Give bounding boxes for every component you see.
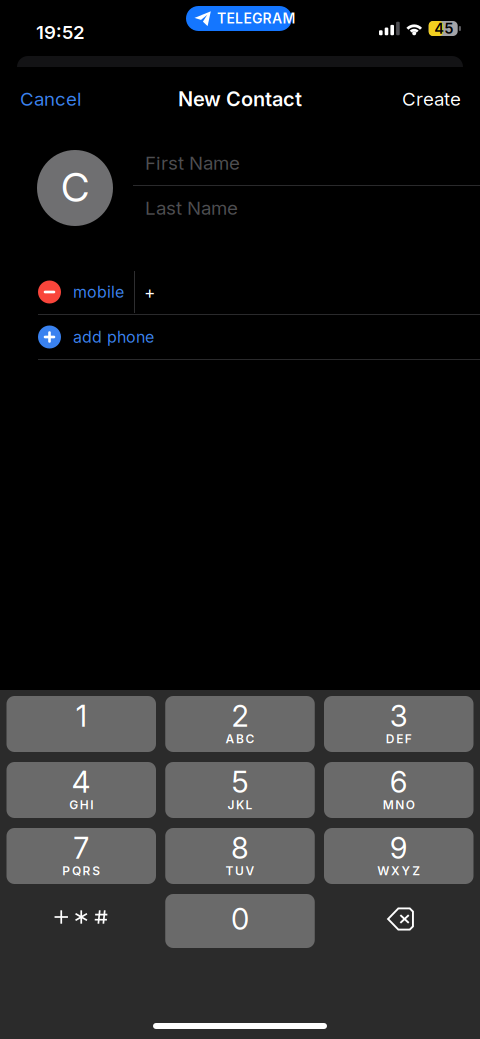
button[interactable]: Delete (324, 894, 473, 948)
button[interactable]: Create (386, 77, 480, 121)
staticText: 7 (73, 830, 89, 866)
button[interactable]: 5 (165, 762, 315, 818)
staticText: New Contact (178, 87, 302, 111)
staticText: JKL (227, 798, 253, 812)
staticText: Cancel (20, 88, 82, 110)
staticText: Last Name (145, 197, 238, 219)
button[interactable]: 2 (165, 696, 315, 752)
staticText: mobile (73, 282, 124, 302)
button[interactable]: Add contact photo (37, 150, 113, 226)
staticText: WXYZ (377, 864, 420, 878)
button[interactable]: Last Name (133, 187, 480, 229)
staticText: First Name (145, 152, 240, 174)
button[interactable]: 3 (324, 696, 473, 752)
button[interactable]: mobile (0, 270, 480, 314)
staticText: 8 (231, 830, 249, 866)
staticText: TELEGRAM (217, 10, 295, 27)
button[interactable]: Plus, star and pound (6, 894, 156, 948)
staticText: 19:52 (36, 21, 85, 44)
button[interactable]: 1 (6, 696, 156, 752)
staticText: Create (402, 88, 461, 110)
button[interactable]: add phone (0, 315, 480, 359)
staticText: add phone (73, 327, 154, 347)
staticText: 3 (390, 698, 408, 734)
button[interactable]: 0 (165, 894, 315, 948)
staticText: C (61, 164, 89, 211)
staticText: 9 (390, 830, 408, 866)
button[interactable]: 9 (324, 828, 473, 884)
staticText: + (144, 281, 155, 302)
staticText: 0 (231, 901, 249, 937)
staticText: 6 (390, 764, 408, 800)
staticText: GHI (69, 798, 93, 812)
staticText: TUV (225, 864, 255, 878)
button[interactable]: 7 (6, 828, 156, 884)
button[interactable]: 4 (6, 762, 156, 818)
staticText: 2 (231, 698, 248, 734)
button[interactable]: First Name (133, 142, 480, 184)
button[interactable]: 6 (324, 762, 473, 818)
staticText: 45 (434, 20, 453, 37)
staticText: ABC (225, 732, 255, 746)
staticText: 1 (76, 698, 87, 734)
staticText: MNO (383, 798, 415, 812)
staticText: DEF (386, 732, 412, 746)
staticText: 5 (231, 764, 248, 800)
button[interactable]: Cancel (0, 77, 98, 121)
button[interactable]: 8 (165, 828, 315, 884)
staticText: PQRS (62, 864, 100, 878)
staticText: 4 (72, 764, 91, 800)
